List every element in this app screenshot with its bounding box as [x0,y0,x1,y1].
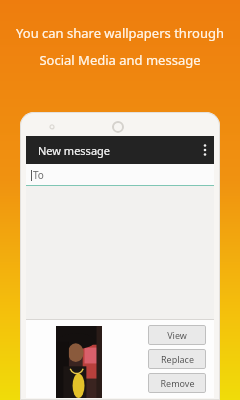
staticText: New message [38,143,111,158]
button[interactable]: View [148,325,206,345]
button[interactable]: Remove [148,373,206,393]
staticText: Remove [160,377,195,389]
staticText: To [33,168,44,182]
staticText: Social Media and message [39,51,201,69]
button[interactable]: To [26,164,214,186]
button[interactable]: More options [196,136,214,164]
staticText: You can share wallpapers through [16,24,224,42]
staticText: View [167,329,187,341]
button[interactable]: Attached photo [56,326,102,398]
staticText: Replace [161,353,194,365]
button[interactable]: Replace [148,349,206,369]
